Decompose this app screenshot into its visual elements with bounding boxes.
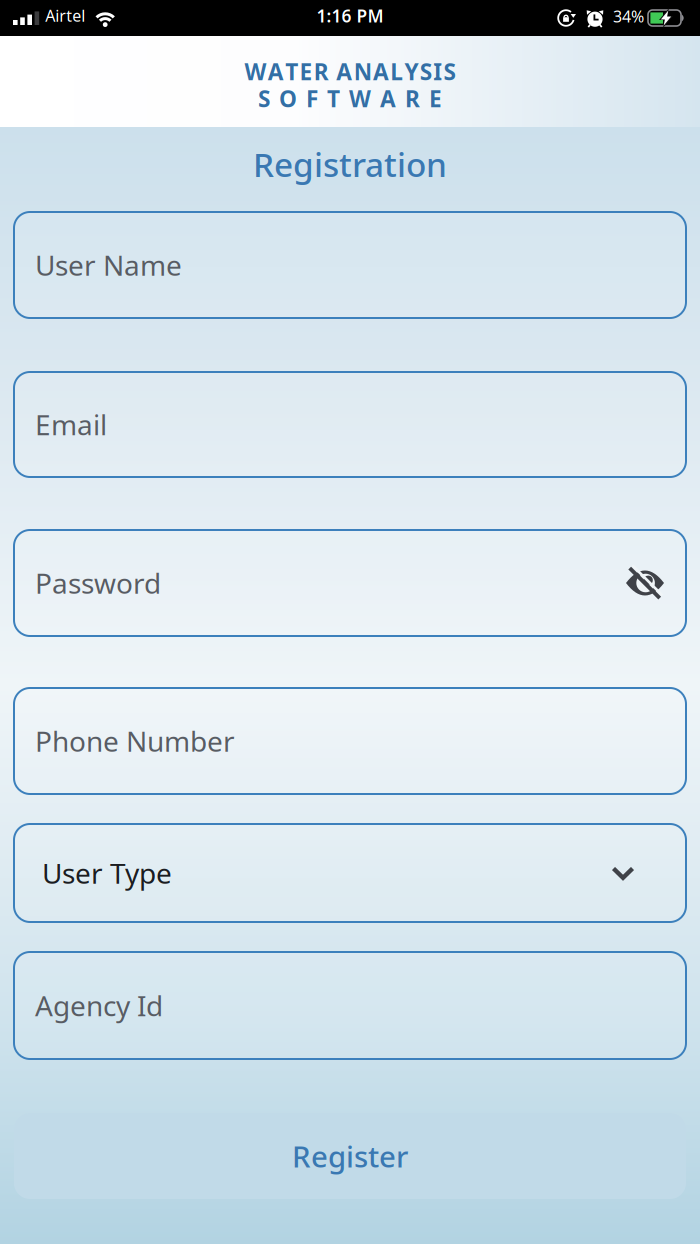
staticText: Email bbox=[35, 406, 107, 443]
staticText: E bbox=[299, 56, 312, 86]
staticText: Password bbox=[35, 564, 161, 602]
staticText: F bbox=[306, 83, 318, 113]
staticText: R bbox=[314, 56, 329, 86]
staticText: Phone Number bbox=[35, 722, 235, 760]
staticText: N bbox=[354, 56, 372, 86]
staticText: W bbox=[349, 83, 371, 113]
button[interactable]: Register bbox=[0, 1113, 700, 1199]
staticText: O bbox=[279, 83, 297, 113]
staticText: 34% bbox=[613, 6, 644, 27]
staticText: I bbox=[433, 56, 442, 86]
staticText: E bbox=[429, 83, 442, 113]
staticText: Airtel bbox=[45, 5, 85, 26]
staticText: A bbox=[373, 56, 389, 86]
staticText: User Type bbox=[42, 854, 172, 892]
staticText: Register bbox=[292, 1136, 408, 1175]
staticText: R bbox=[405, 83, 420, 113]
staticText: A bbox=[380, 83, 396, 113]
staticText: User Name bbox=[35, 246, 182, 284]
button[interactable]: User Type bbox=[0, 824, 700, 922]
staticText: Agency Id bbox=[35, 987, 163, 1024]
button[interactable]: Show password bbox=[623, 561, 686, 605]
staticText: W bbox=[245, 56, 267, 86]
staticText: S bbox=[443, 56, 455, 86]
staticText: T bbox=[285, 56, 298, 86]
staticText: T bbox=[327, 83, 340, 113]
staticText: A bbox=[268, 56, 284, 86]
staticText: Y bbox=[405, 56, 419, 86]
staticText: S bbox=[258, 83, 270, 113]
staticText: L bbox=[390, 56, 403, 86]
staticText: A bbox=[336, 56, 352, 86]
staticText: S bbox=[420, 56, 432, 86]
staticText: 1:16 PM bbox=[316, 4, 383, 27]
staticText: Registration bbox=[253, 142, 447, 186]
